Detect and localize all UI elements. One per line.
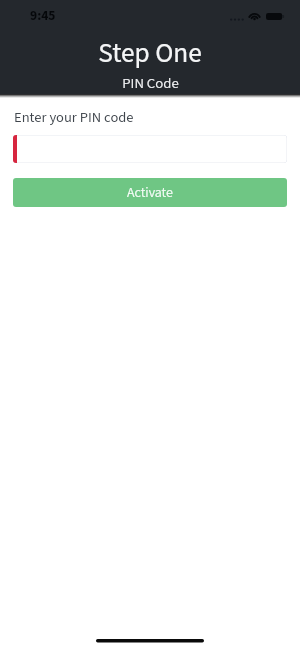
staticText: PIN Code xyxy=(122,73,179,94)
staticText: 9:45 xyxy=(30,6,56,25)
staticText: Enter your PIN code xyxy=(14,107,134,128)
staticText: Activate xyxy=(127,183,173,203)
button[interactable] xyxy=(13,135,287,163)
other: Wi-Fi xyxy=(248,11,261,20)
other: Battery xyxy=(266,13,285,20)
staticText: Step One xyxy=(98,34,202,73)
other: Cellular signal xyxy=(230,9,243,21)
button[interactable]: Activate xyxy=(13,178,287,207)
